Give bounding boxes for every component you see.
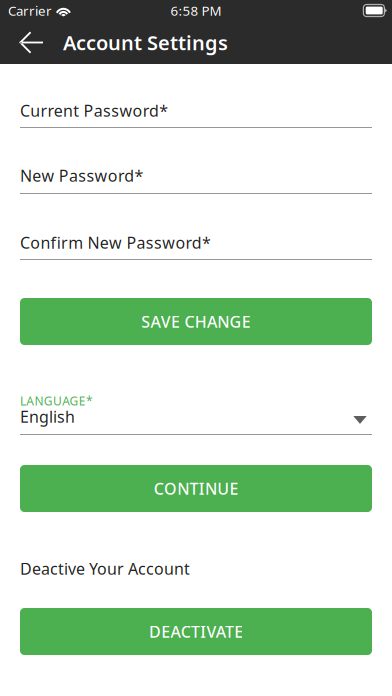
staticText: 6:58 PM bbox=[170, 2, 221, 19]
button[interactable]: DEACTIVATE bbox=[20, 608, 372, 655]
staticText: Confirm New Password* bbox=[20, 232, 211, 249]
staticText: Deactive Your Account bbox=[20, 558, 190, 575]
staticText: DEACTIVATE bbox=[149, 621, 243, 642]
button[interactable]: CONTINUE bbox=[20, 465, 372, 512]
button[interactable]: New Password* bbox=[20, 165, 372, 194]
staticText: LANGUAGE* bbox=[20, 393, 93, 404]
staticText: English bbox=[20, 406, 75, 423]
staticText: CONTINUE bbox=[154, 478, 238, 499]
staticText: Account Settings bbox=[63, 29, 228, 56]
staticText: Carrier bbox=[8, 2, 52, 19]
staticText: SAVE CHANGE bbox=[141, 311, 251, 332]
button[interactable]: LANGUAGE* bbox=[20, 393, 372, 435]
button[interactable]: Current Password* bbox=[20, 100, 372, 128]
button[interactable]: SAVE CHANGE bbox=[20, 298, 372, 345]
staticText: Current Password* bbox=[20, 100, 168, 117]
button[interactable]: Back bbox=[0, 21, 63, 64]
staticText: New Password* bbox=[20, 165, 143, 182]
button[interactable]: Confirm New Password* bbox=[20, 232, 372, 260]
